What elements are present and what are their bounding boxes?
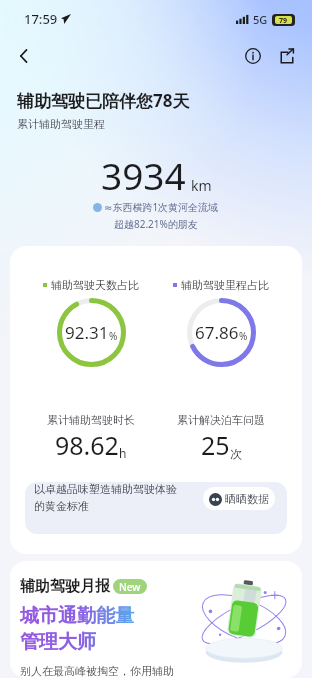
staticText: 辅助驾驶已陪伴您78天 xyxy=(17,89,190,112)
staticText: 超越82.21%的朋友 xyxy=(114,217,198,231)
staticText: 98.62 xyxy=(55,428,119,462)
staticText: 累计解决泊车问题 xyxy=(177,413,265,427)
staticText: 67.86 xyxy=(195,321,239,344)
button[interactable]: Info xyxy=(238,41,268,71)
staticText: 3934 xyxy=(101,150,186,200)
staticText: h xyxy=(119,445,127,461)
staticText: km xyxy=(191,176,212,195)
staticText: 城市通勤能量 管理大师 xyxy=(20,604,134,654)
staticText: New xyxy=(119,580,141,594)
button[interactable]: 晒晒数据 xyxy=(203,487,275,510)
staticText: ≈东西横跨1次黄河全流域 xyxy=(104,200,219,214)
staticText: 辅助驾驶里程占比 xyxy=(181,278,269,292)
staticText: 17:59 xyxy=(24,10,58,28)
staticText: 累计辅助驾驶时长 xyxy=(47,413,135,427)
button[interactable]: Back xyxy=(8,40,40,72)
staticText: 累计辅助驾驶里程 xyxy=(17,117,105,131)
staticText: 以卓越品味塑造辅助驾驶体验 的黄金标准 xyxy=(34,482,177,514)
staticText: 辅助驾驶天数占比 xyxy=(51,278,139,292)
staticText: 次 xyxy=(230,446,242,461)
button[interactable]: Share xyxy=(272,41,302,71)
staticText: 92.31 xyxy=(65,321,109,344)
staticText: 晒晒数据 xyxy=(225,492,269,506)
staticText: 79 xyxy=(279,16,288,24)
staticText: % xyxy=(239,329,248,343)
staticText: 别人在最高峰被掏空，你用辅助 xyxy=(20,664,174,678)
staticText: 5G xyxy=(253,12,268,27)
staticText: 辅助驾驶月报 xyxy=(20,577,110,596)
staticText: 25 xyxy=(201,428,230,462)
staticText: % xyxy=(109,329,118,343)
